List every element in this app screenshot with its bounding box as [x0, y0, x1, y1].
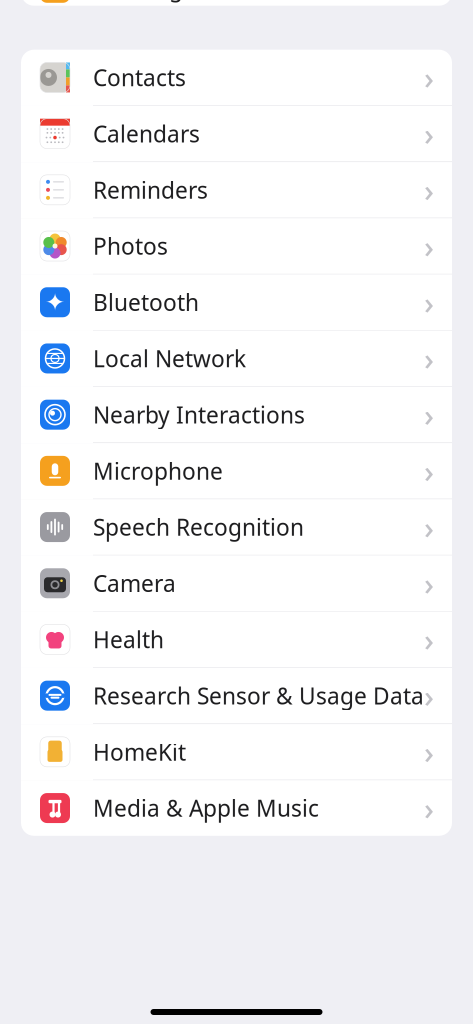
staticText: › [424, 394, 434, 435]
staticText: Tracking [93, 0, 183, 3]
staticText: › [424, 507, 434, 547]
staticText: Calendars [93, 119, 200, 149]
staticText: Health [93, 624, 164, 654]
button[interactable]: Nearby Interactions [21, 387, 452, 443]
staticText: › [424, 619, 434, 660]
button[interactable]: Photos [21, 218, 452, 274]
button[interactable]: Microphone [21, 443, 452, 499]
button[interactable]: HomeKit [21, 724, 452, 780]
staticText: ✦ [45, 289, 65, 316]
button[interactable]: Reminders [21, 162, 452, 218]
button[interactable]: Contacts [21, 50, 452, 106]
staticText: › [424, 563, 434, 604]
button[interactable]: Speech Recognition [21, 499, 452, 555]
staticText: Speech Recognition [93, 512, 304, 542]
button[interactable]: Local Network [21, 331, 452, 387]
button[interactable]: ✦ [21, 274, 452, 331]
button[interactable]: Camera [21, 555, 452, 612]
staticText: › [424, 282, 434, 323]
staticText: Reminders [93, 175, 208, 205]
staticText: › [424, 675, 434, 716]
staticText: Camera [93, 568, 176, 598]
staticText: › [424, 0, 434, 8]
button[interactable]: Tracking [21, 0, 452, 15]
staticText: Microphone [93, 456, 223, 486]
staticText: › [424, 731, 434, 772]
staticText: › [424, 226, 434, 266]
staticText: › [424, 788, 434, 828]
staticText: Local Network [93, 343, 246, 373]
staticText: › [424, 450, 434, 491]
staticText: Bluetooth [93, 287, 199, 317]
staticText: Research Sensor & Usage Data [93, 681, 424, 711]
staticText: Nearby Interactions [93, 400, 305, 430]
button[interactable]: Health [21, 612, 452, 668]
staticText: › [424, 338, 434, 379]
staticText: Photos [93, 231, 168, 261]
staticText: › [424, 57, 434, 98]
staticText: Media & Apple Music [93, 793, 319, 823]
button[interactable]: Media & Apple Music [21, 780, 452, 836]
button[interactable]: Research Sensor & Usage Data [21, 668, 452, 724]
staticText: › [424, 113, 434, 154]
staticText: › [424, 169, 434, 210]
staticText: HomeKit [93, 737, 186, 767]
button[interactable]: Calendars [21, 106, 452, 162]
staticText: Contacts [93, 62, 186, 92]
